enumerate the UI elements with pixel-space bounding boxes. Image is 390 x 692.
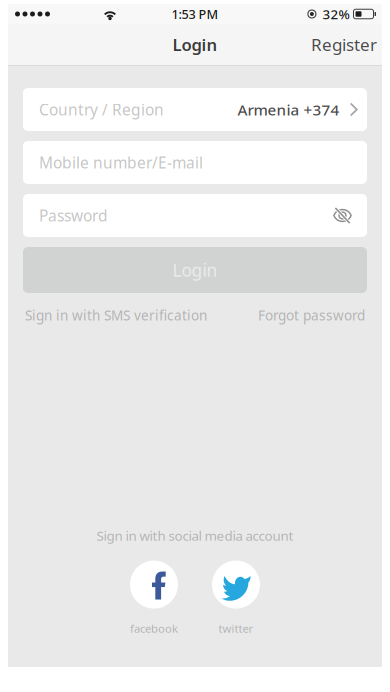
button[interactable]: Register	[306, 24, 382, 64]
staticText: Sign in with SMS verification	[25, 306, 207, 324]
staticText: Forgot password	[258, 306, 365, 324]
button[interactable]: Forgot password	[258, 306, 365, 324]
staticText: 1:53 PM	[171, 5, 218, 23]
staticText: 32%	[322, 5, 349, 23]
staticText: Login	[172, 33, 217, 56]
staticText: facebook	[130, 621, 178, 636]
button[interactable]: Sign in with SMS verification	[25, 306, 207, 324]
staticText: twitter	[218, 621, 253, 636]
button[interactable]: twitter	[212, 561, 260, 636]
button[interactable]: facebook	[130, 561, 178, 636]
staticText: Register	[311, 33, 377, 56]
staticText: Sign in with social media account	[96, 526, 293, 545]
staticText: Password	[39, 205, 108, 226]
staticText: Armenia +374	[237, 99, 339, 120]
button[interactable]: Show password	[333, 207, 359, 224]
staticText: Mobile number/E-mail	[39, 152, 203, 173]
staticText: Country / Region	[39, 99, 164, 120]
staticText: Login	[172, 258, 217, 282]
button[interactable]: Country / Region	[23, 88, 367, 131]
